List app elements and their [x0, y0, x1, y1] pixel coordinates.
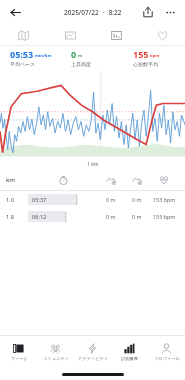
button[interactable]: 計測履歴	[111, 336, 148, 368]
button[interactable]: 1.8	[0, 208, 185, 225]
staticText: プロフィール	[154, 356, 180, 361]
staticText: 1.8	[6, 213, 28, 221]
staticText: アクティビティ	[78, 356, 108, 361]
staticText: km	[6, 176, 28, 184]
button[interactable]: 1.0	[0, 191, 185, 208]
staticText: 05:53	[10, 48, 34, 60]
staticText: 0 m	[106, 196, 116, 203]
button[interactable]: プロフィール	[148, 336, 185, 368]
staticText: min/km	[35, 53, 52, 59]
button[interactable]: Stats	[93, 24, 139, 46]
button[interactable]: Map	[0, 24, 47, 46]
staticText: 0 m	[132, 213, 142, 220]
staticText: 153 bpm	[153, 196, 176, 203]
button[interactable]: Graph	[47, 24, 93, 46]
button[interactable]: アクティビティ	[74, 336, 111, 368]
staticText: コミュニティ	[43, 356, 69, 361]
button[interactable]: Heart rate	[139, 24, 185, 46]
staticText: 155 bpm	[153, 213, 176, 220]
staticText: 06:12	[32, 213, 47, 221]
staticText: 平均ペース	[10, 61, 36, 67]
staticText: 0 m	[106, 213, 116, 220]
staticText: 2025/07/22 ・ 8:22	[64, 8, 122, 17]
button[interactable]: More options	[159, 1, 181, 23]
staticText: 155	[133, 48, 149, 60]
staticText: 05:37	[32, 196, 47, 204]
staticText: 1 km	[87, 161, 99, 168]
button[interactable]: フィード	[0, 336, 37, 368]
staticText: フィード	[10, 356, 28, 361]
staticText: 心拍数平均	[133, 61, 158, 67]
staticText: bpm	[150, 53, 160, 59]
staticText: 0	[71, 48, 77, 60]
staticText: 0 m	[132, 196, 142, 203]
button[interactable]: Share	[137, 1, 159, 23]
staticText: 1.0	[6, 196, 28, 204]
staticText: 計測履歴	[121, 356, 138, 361]
button[interactable]: コミュニティ	[37, 336, 74, 368]
button[interactable]: Back	[4, 1, 26, 23]
staticText: m	[78, 53, 83, 59]
staticText: 上昇高度	[71, 61, 91, 67]
